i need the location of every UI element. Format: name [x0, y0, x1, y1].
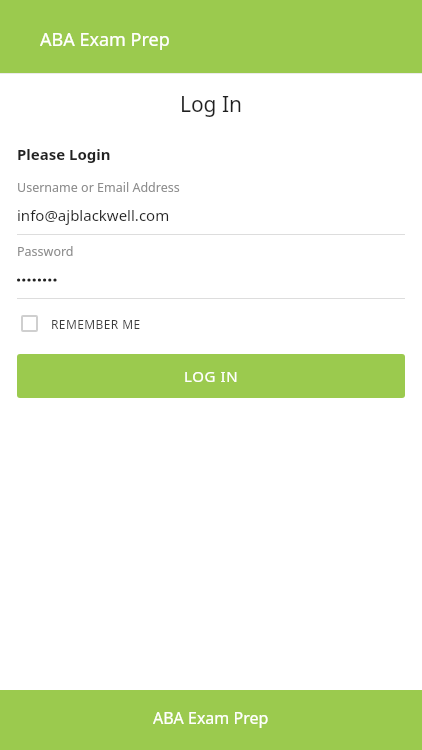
button[interactable]: ABA Exam Prep	[0, 690, 422, 750]
staticText: info@ajblackwell.com	[17, 205, 170, 225]
staticText: ABA Exam Prep	[40, 27, 170, 52]
button[interactable]: info@ajblackwell.com	[0, 204, 422, 225]
staticText: ABA Exam Prep	[153, 707, 269, 729]
button[interactable]: REMEMBER ME	[17, 312, 151, 335]
staticText: Please Login	[17, 144, 111, 164]
staticText: Log In	[0, 90, 422, 119]
staticText: REMEMBER ME	[51, 316, 141, 332]
staticText: Username or Email Address	[17, 179, 180, 196]
staticText: Password	[17, 243, 74, 260]
staticText: LOG IN	[184, 366, 239, 386]
button[interactable]: LOG IN	[17, 354, 405, 398]
button[interactable]	[0, 268, 422, 289]
